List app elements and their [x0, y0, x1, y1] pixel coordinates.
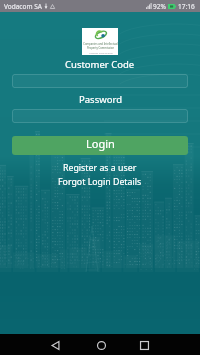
staticText: Register as a user: [63, 162, 137, 174]
staticText: Password: [79, 93, 122, 106]
staticText: Login: [86, 136, 115, 151]
staticText: Companies and Intellectual Property Comm…: [83, 42, 118, 50]
staticText: 17:16: [178, 2, 195, 11]
button[interactable]: Back: [44, 335, 66, 355]
button[interactable]: Forgot Login Details: [0, 176, 200, 188]
button[interactable]: Home: [90, 335, 112, 355]
staticText: Forgot Login Details: [58, 176, 142, 188]
staticText: 92%: [153, 2, 166, 11]
button[interactable]: Register as a user: [0, 162, 200, 174]
staticText: Vodacom SA: [4, 2, 42, 11]
button[interactable]: Recents: [133, 335, 155, 355]
button[interactable]: [12, 109, 188, 123]
button[interactable]: Login: [12, 136, 188, 155]
staticText: a member of the dti group: [89, 52, 113, 55]
staticText: Customer Code: [65, 58, 135, 71]
button[interactable]: [12, 74, 188, 88]
